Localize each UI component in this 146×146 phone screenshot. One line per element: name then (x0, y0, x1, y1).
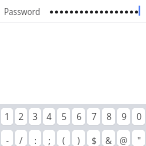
button[interactable]: 5 (57, 108, 70, 125)
button[interactable]: 0 (132, 108, 145, 125)
staticText: 4 (46, 110, 52, 122)
staticText: 6 (76, 110, 82, 122)
button[interactable]: 3 (29, 108, 41, 125)
staticText: " (137, 134, 141, 146)
button[interactable]: Password (0, 0, 146, 22)
button[interactable]: 9 (117, 108, 130, 125)
staticText: 0 (136, 110, 142, 122)
button[interactable]: & (102, 130, 115, 146)
staticText: ; (48, 134, 51, 146)
staticText: $ (91, 134, 97, 146)
button[interactable]: 2 (15, 108, 27, 125)
staticText: 2 (18, 110, 24, 122)
button[interactable]: $ (87, 130, 100, 146)
staticText: 3 (32, 110, 38, 122)
staticText: : (34, 134, 37, 146)
button[interactable]: 4 (43, 108, 55, 125)
staticText: 1 (4, 110, 10, 122)
button[interactable]: / (15, 130, 27, 146)
staticText: & (105, 134, 112, 146)
button[interactable]: ; (43, 130, 55, 146)
button[interactable]: @ (117, 130, 130, 146)
button[interactable]: ) (72, 130, 85, 146)
button[interactable]: 8 (102, 108, 115, 125)
staticText: ( (62, 134, 65, 146)
staticText: / (19, 134, 23, 146)
staticText: 8 (106, 110, 112, 122)
staticText: - (6, 134, 9, 146)
staticText: 9 (121, 110, 127, 122)
staticText: 7 (91, 110, 97, 122)
button[interactable]: " (132, 130, 145, 146)
staticText: Password (4, 6, 41, 17)
staticText: ) (77, 134, 80, 146)
staticText: @ (119, 134, 128, 146)
button[interactable]: : (29, 130, 41, 146)
staticText: 5 (61, 110, 67, 122)
button[interactable]: 1 (1, 108, 13, 125)
button[interactable]: ( (57, 130, 70, 146)
button[interactable]: 7 (87, 108, 100, 125)
button[interactable]: 6 (72, 108, 85, 125)
button[interactable]: - (1, 130, 13, 146)
